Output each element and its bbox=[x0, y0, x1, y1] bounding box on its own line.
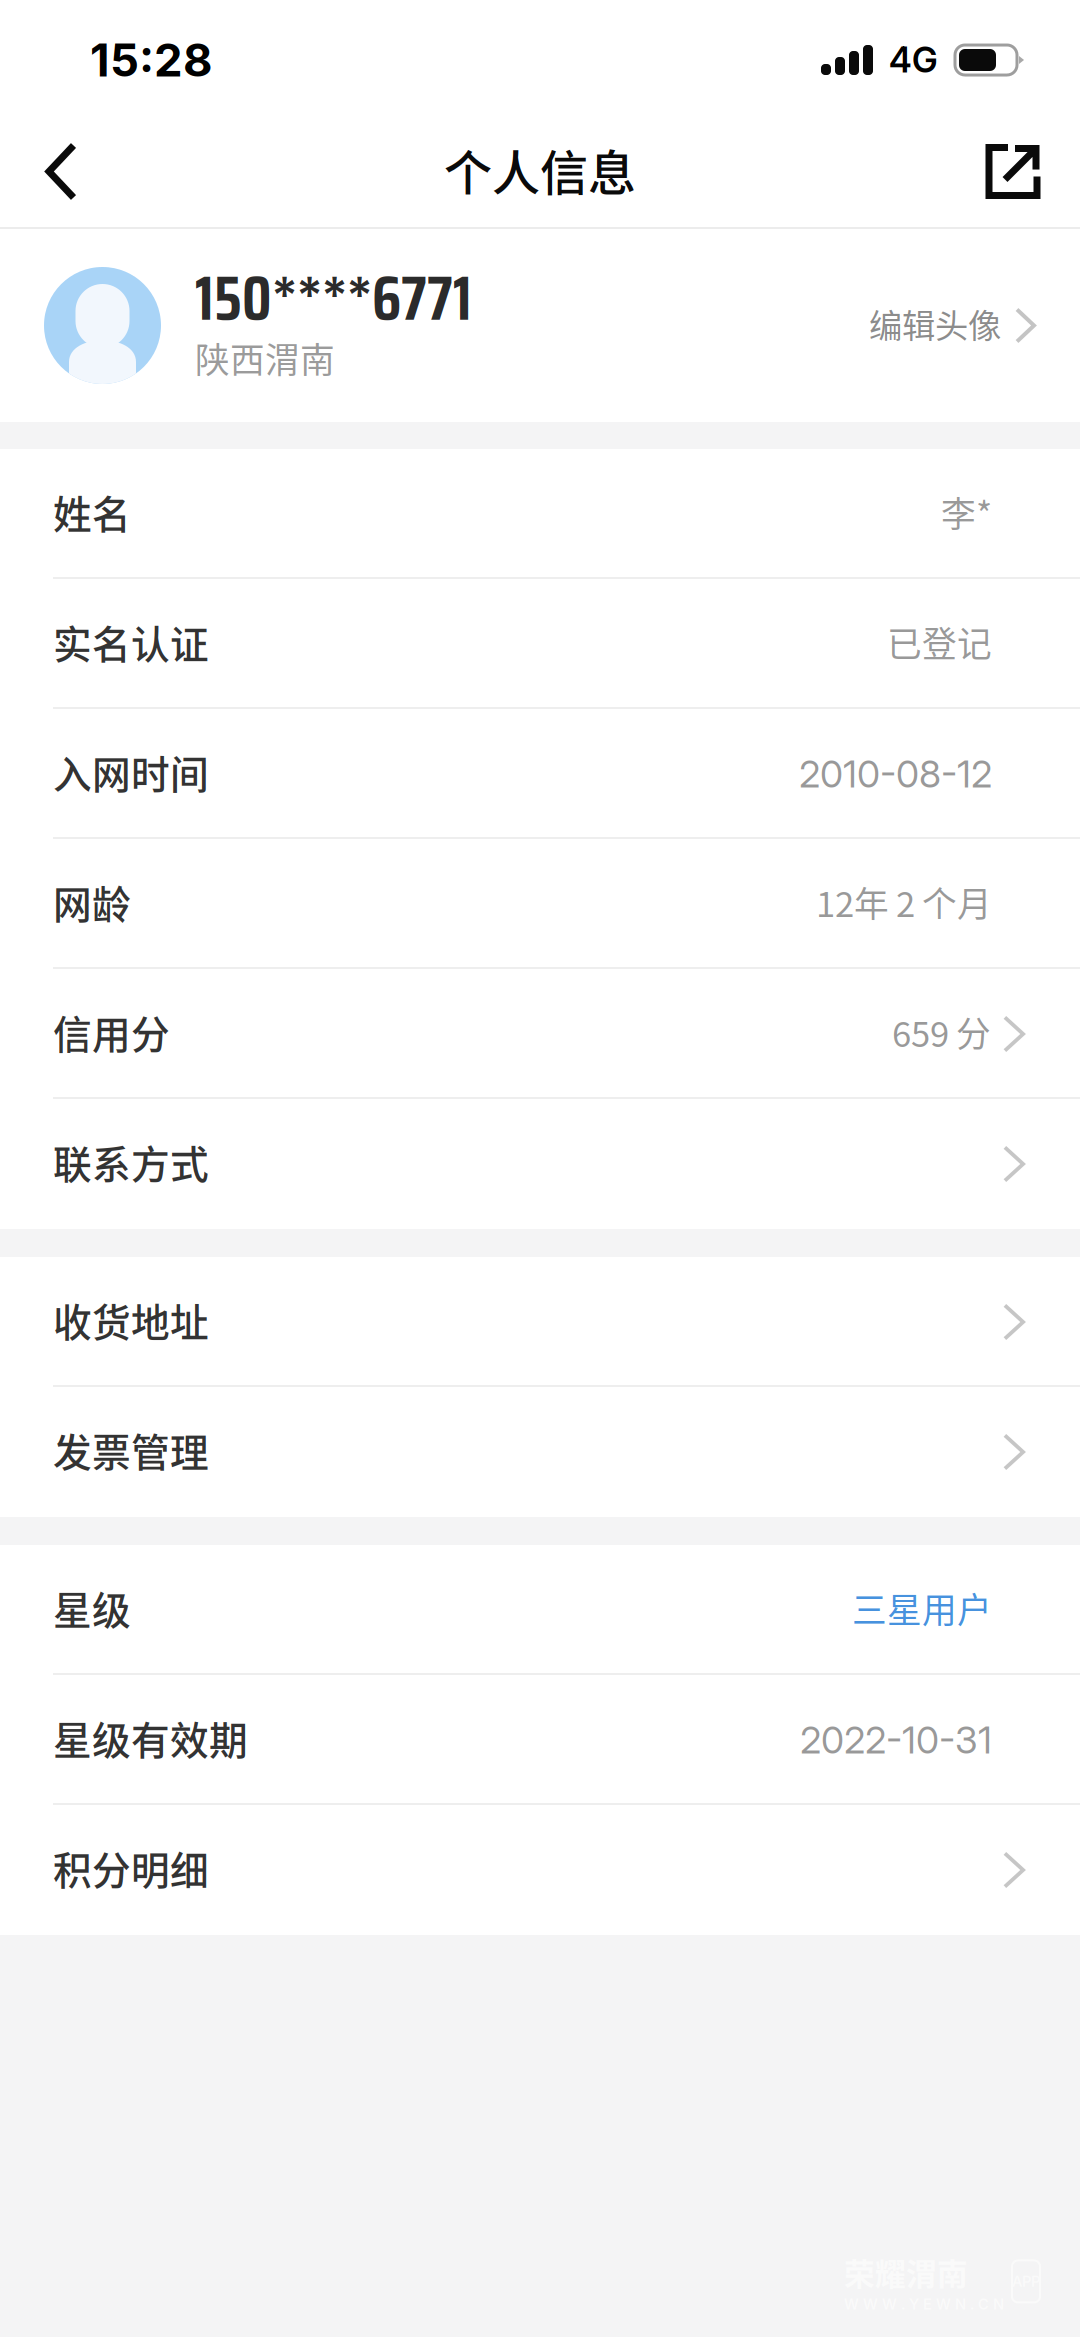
staticText: 星级 bbox=[53, 1580, 131, 1636]
button[interactable]: 实名认证 bbox=[0, 579, 1080, 709]
staticText: 陕西渭南 bbox=[195, 333, 335, 383]
button[interactable]: 网龄 bbox=[0, 839, 1080, 969]
staticText: 入网时间 bbox=[53, 744, 209, 800]
staticText: 收货地址 bbox=[53, 1292, 209, 1348]
button[interactable]: Back bbox=[11, 123, 111, 223]
staticText: 个人信息 bbox=[444, 135, 636, 204]
button[interactable]: 星级 bbox=[0, 1545, 1080, 1675]
button[interactable]: 姓名 bbox=[0, 449, 1080, 579]
staticText: 已登记 bbox=[887, 617, 992, 667]
staticText: 2022-10-31 bbox=[800, 1717, 992, 1763]
button[interactable]: 收货地址 bbox=[0, 1257, 1080, 1387]
staticText: 积分明细 bbox=[53, 1840, 209, 1896]
staticText: 联系方式 bbox=[53, 1134, 209, 1190]
button[interactable]: 积分明细 bbox=[0, 1805, 1080, 1935]
staticText: 2010-08-12 bbox=[799, 751, 992, 797]
button[interactable]: 150****6771 bbox=[0, 229, 1080, 422]
button[interactable]: 入网时间 bbox=[0, 709, 1080, 839]
button[interactable]: 联系方式 bbox=[0, 1099, 1080, 1229]
staticText: 编辑头像 bbox=[869, 299, 1001, 348]
staticText: 三星用户 bbox=[852, 1583, 992, 1633]
staticText: 4G bbox=[889, 39, 938, 81]
staticText: 659 分 bbox=[892, 1007, 991, 1057]
staticText: 12年 2 个月 bbox=[816, 877, 992, 927]
staticText: 发票管理 bbox=[53, 1422, 209, 1478]
button[interactable]: 星级有效期 bbox=[0, 1675, 1080, 1805]
staticText: 信用分 bbox=[53, 1004, 170, 1060]
staticText: 实名认证 bbox=[53, 614, 209, 670]
button[interactable]: 发票管理 bbox=[0, 1387, 1080, 1517]
staticText: 星级有效期 bbox=[53, 1710, 248, 1766]
staticText: 网龄 bbox=[53, 874, 131, 930]
staticText: 150****6771 bbox=[195, 250, 472, 347]
staticText: 15:28 bbox=[90, 33, 213, 87]
staticText: 李* bbox=[941, 487, 992, 537]
button[interactable]: Share bbox=[963, 123, 1063, 223]
button[interactable]: 信用分 bbox=[0, 969, 1080, 1099]
staticText: 姓名 bbox=[53, 484, 131, 540]
